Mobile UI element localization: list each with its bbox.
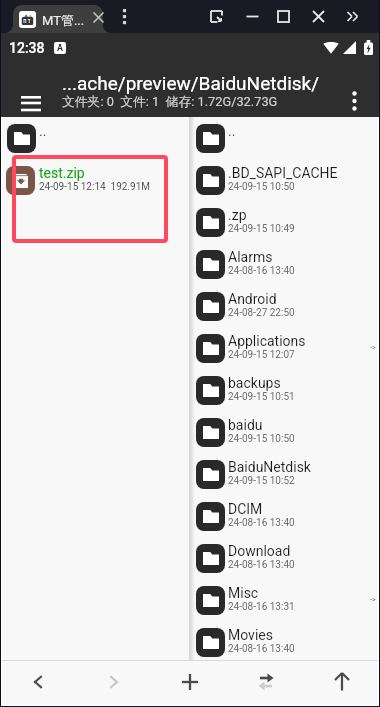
button[interactable]: Tab menu <box>114 6 135 27</box>
button[interactable]: More window options <box>344 7 363 26</box>
button[interactable]: BaiduNetdisk <box>189 453 380 495</box>
staticText: test.zip <box>39 165 85 181</box>
staticText: MT管... <box>42 12 85 28</box>
button[interactable]: Download <box>189 537 380 579</box>
staticText: Applications <box>228 333 306 349</box>
staticText: BaiduNetdisk <box>228 459 311 475</box>
staticText: Android <box>228 291 277 307</box>
button[interactable]: backups <box>189 369 380 411</box>
button[interactable]: MT管... <box>5 5 111 33</box>
button[interactable]: New <box>152 661 228 707</box>
button[interactable]: Movies <box>189 621 380 660</box>
staticText: A <box>57 43 64 54</box>
staticText: .BD_SAPI_CACHE <box>228 165 338 181</box>
staticText: 24-09-15 10:50 <box>228 181 295 193</box>
button[interactable]: Up <box>304 661 380 707</box>
button[interactable]: .. <box>189 117 380 159</box>
staticText: Alarms <box>228 249 273 265</box>
button[interactable]: Android <box>189 285 380 327</box>
button[interactable]: .BD_SAPI_CACHE <box>189 159 380 201</box>
button[interactable]: .. <box>0 117 189 159</box>
button[interactable]: baidu <box>189 411 380 453</box>
staticText: .. <box>228 123 236 139</box>
staticText: 24-08-16 13:40 <box>228 643 295 655</box>
staticText: -> <box>370 344 376 352</box>
button[interactable]: test.zip <box>0 159 189 201</box>
button[interactable]: Misc <box>189 579 380 621</box>
button[interactable]: Close <box>309 7 328 26</box>
button[interactable]: Options <box>336 83 372 119</box>
staticText: 24-09-15 10:49 <box>228 223 295 235</box>
staticText: 24-09-15 12:07 <box>228 349 295 361</box>
staticText: 文件夹: 0 文件: 1 储存: 1.72G/32.73G <box>62 94 278 110</box>
staticText: 24-08-16 13:31 <box>228 601 295 613</box>
staticText: .zp <box>228 207 247 223</box>
staticText: 12:38 <box>9 40 45 56</box>
staticText: DCIM <box>228 501 263 517</box>
staticText: backups <box>228 375 281 391</box>
button[interactable]: Restore <box>207 7 226 26</box>
button[interactable]: Applications <box>189 327 380 369</box>
button[interactable]: Forward <box>76 661 152 707</box>
button[interactable]: Back <box>0 661 76 707</box>
staticText: 24-08-16 13:40 <box>228 265 295 277</box>
button[interactable]: DCIM <box>189 495 380 537</box>
button[interactable]: Menu <box>11 83 51 123</box>
staticText: 24-09-15 10:52 <box>228 475 295 487</box>
staticText: 24-08-16 13:40 <box>228 559 295 571</box>
staticText: -> <box>370 596 376 604</box>
staticText: 24-09-15 12:14 192.91M <box>39 181 151 193</box>
staticText: 24-08-16 13:40 <box>228 517 295 529</box>
button[interactable]: Close tab <box>88 7 109 28</box>
staticText: Download <box>228 543 291 559</box>
staticText: .. <box>39 123 47 139</box>
staticText: baidu <box>228 417 263 433</box>
staticText: Misc <box>228 585 259 601</box>
button[interactable]: Maximize <box>274 7 293 26</box>
staticText: 24-09-15 10:50 <box>228 433 295 445</box>
button[interactable]: Switch <box>228 661 304 707</box>
staticText: 24-09-15 10:51 <box>228 391 295 403</box>
button[interactable]: Minimize <box>243 7 262 26</box>
staticText: Movies <box>228 627 273 643</box>
staticText: ...ache/preview/BaiduNetdisk/ <box>62 72 320 94</box>
button[interactable]: Alarms <box>189 243 380 285</box>
button[interactable]: .zp <box>189 201 380 243</box>
staticText: 24-08-27 22:50 <box>228 307 295 319</box>
